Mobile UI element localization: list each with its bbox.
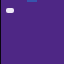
- button[interactable]: Card: [6, 8, 14, 13]
